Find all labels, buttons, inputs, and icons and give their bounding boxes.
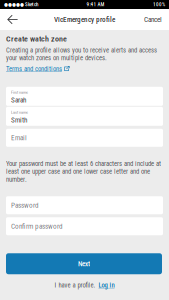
staticText: Your password must be at least 6 charact… [6,160,161,183]
button[interactable]: Terms and conditions [6,65,70,73]
staticText: Creating a profile allows you to receive… [6,46,157,62]
button[interactable]: Back [0,9,22,30]
staticText: 9:41 AM [86,1,104,7]
button[interactable]: Log in [95,281,114,289]
staticText: Create watch zone [6,34,67,43]
button[interactable]: Password [6,196,163,214]
staticText: First name [11,90,28,95]
staticText: Email [11,134,27,142]
staticText: Last name [11,110,28,115]
staticText: ●●●●● Sketch [4,1,38,7]
staticText: I have a profile. [54,281,95,289]
staticText: Terms and conditions [6,65,62,73]
staticText: Password [11,201,39,209]
staticText: 100% [153,1,165,7]
staticText: Smith [11,116,27,124]
staticText: VicEmergency profile [54,15,115,24]
button[interactable]: Email [6,129,163,147]
staticText: Log in [98,281,114,289]
button[interactable]: Last name [6,107,163,126]
button[interactable]: First name [6,87,163,106]
button[interactable]: Confirm password [6,217,163,235]
staticText: Sarah [11,96,26,104]
staticText: Confirm password [11,222,63,230]
staticText: Next [78,259,90,268]
button[interactable]: Cancel [140,9,169,30]
button[interactable]: Next [6,253,162,274]
staticText: Cancel [144,15,162,24]
